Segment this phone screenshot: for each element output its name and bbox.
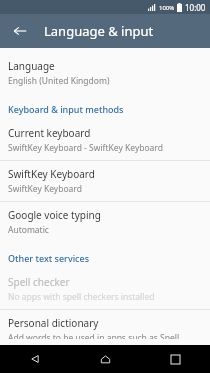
button[interactable]: Current keyboard: [0, 120, 210, 160]
staticText: English (United Kingdom): [8, 75, 110, 87]
staticText: Google voice typing: [8, 208, 101, 222]
staticText: SwiftKey Keyboard - SwiftKey Keyboard: [8, 142, 163, 154]
button: Spell checker: [0, 269, 210, 309]
staticText: 100%: [159, 4, 175, 12]
staticText: Personal dictionary: [8, 316, 99, 330]
staticText: Spell checker: [8, 275, 70, 289]
button[interactable]: Language: [0, 53, 210, 93]
staticText: SwiftKey Keyboard: [8, 183, 82, 195]
button[interactable]: Personal dictionary: [0, 310, 210, 345]
staticText: Language: [8, 59, 55, 73]
staticText: No apps with spell checkers installed: [8, 291, 155, 303]
button[interactable]: Google voice typing: [0, 202, 210, 242]
staticText: 10:00: [185, 2, 206, 13]
staticText: Current keyboard: [8, 126, 91, 140]
staticText: Keyboard & input methods: [8, 103, 124, 115]
button[interactable]: Recent apps: [140, 345, 210, 373]
staticText: Language & input: [44, 22, 154, 40]
button[interactable]: Back: [0, 345, 70, 373]
staticText: Automatic: [8, 224, 49, 236]
staticText: Add words to be used in apps such as Spe…: [8, 332, 202, 339]
staticText: SwiftKey Keyboard: [8, 167, 95, 181]
button[interactable]: Home: [70, 345, 140, 373]
button[interactable]: Back: [8, 19, 32, 43]
button[interactable]: SwiftKey Keyboard: [0, 161, 210, 201]
staticText: Other text services: [8, 252, 90, 264]
